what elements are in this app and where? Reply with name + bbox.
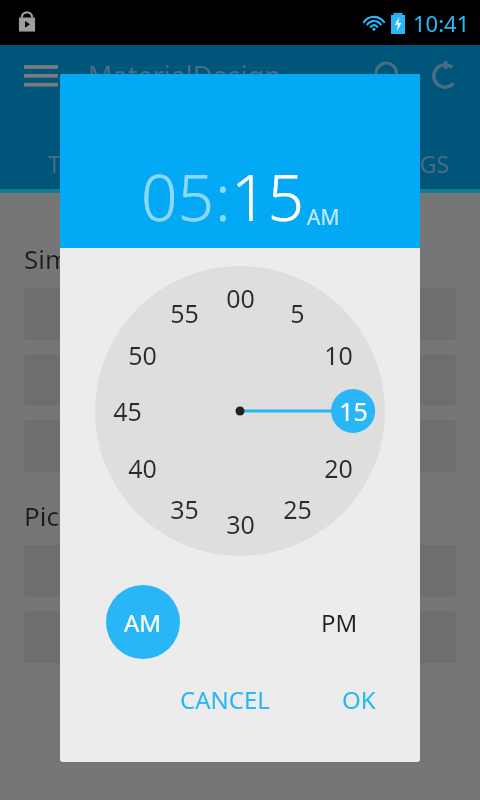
button[interactable]: 15	[331, 389, 375, 433]
staticText: CANCEL	[180, 683, 270, 716]
staticText: :	[215, 153, 231, 240]
button[interactable]: 05	[141, 153, 215, 240]
staticText: 10:41	[413, 8, 470, 38]
other: Search	[372, 59, 406, 93]
staticText: DIALOGS	[351, 148, 450, 179]
button[interactable]: 25	[275, 487, 319, 531]
staticText: Simple dialogs	[24, 241, 202, 276]
staticText: 30	[226, 507, 255, 541]
staticText: 10	[324, 338, 353, 372]
button[interactable]: 50	[120, 333, 164, 377]
staticText: Picker dialogs	[24, 498, 194, 533]
staticText: 5	[290, 296, 305, 330]
staticText: 55	[170, 296, 199, 330]
staticText: 25	[283, 492, 312, 526]
button[interactable]: CANCEL	[164, 675, 286, 724]
button[interactable]: AM	[106, 585, 180, 659]
staticText: 50	[128, 338, 157, 372]
staticText: BUTTONS	[187, 148, 293, 179]
staticText: OK	[342, 683, 376, 716]
staticText: AM	[124, 606, 162, 639]
button[interactable]: 55	[162, 291, 206, 335]
button[interactable]: 35	[162, 487, 206, 531]
button[interactable]: 20	[316, 446, 360, 490]
staticText: 00	[226, 281, 255, 315]
staticText: TEXTS	[48, 148, 113, 179]
button[interactable]: 40	[120, 446, 164, 490]
button[interactable]: OK	[326, 675, 392, 724]
staticText: 45	[113, 394, 142, 428]
staticText: 20	[324, 451, 353, 485]
staticText: 40	[128, 451, 157, 485]
button[interactable]: 5	[275, 291, 319, 335]
other: Refresh	[428, 59, 462, 93]
button[interactable]: 45	[105, 389, 149, 433]
staticText: 15	[339, 394, 368, 428]
button[interactable]: 00	[218, 276, 262, 320]
staticText: MaterialDesign	[88, 57, 281, 94]
staticText: AM	[307, 203, 340, 232]
staticText: 35	[170, 492, 199, 526]
button[interactable]: PM	[302, 585, 376, 659]
button[interactable]: 30	[218, 502, 262, 546]
button[interactable]: 10	[316, 333, 360, 377]
button[interactable]: 15	[231, 153, 305, 240]
staticText: PM	[321, 606, 358, 639]
